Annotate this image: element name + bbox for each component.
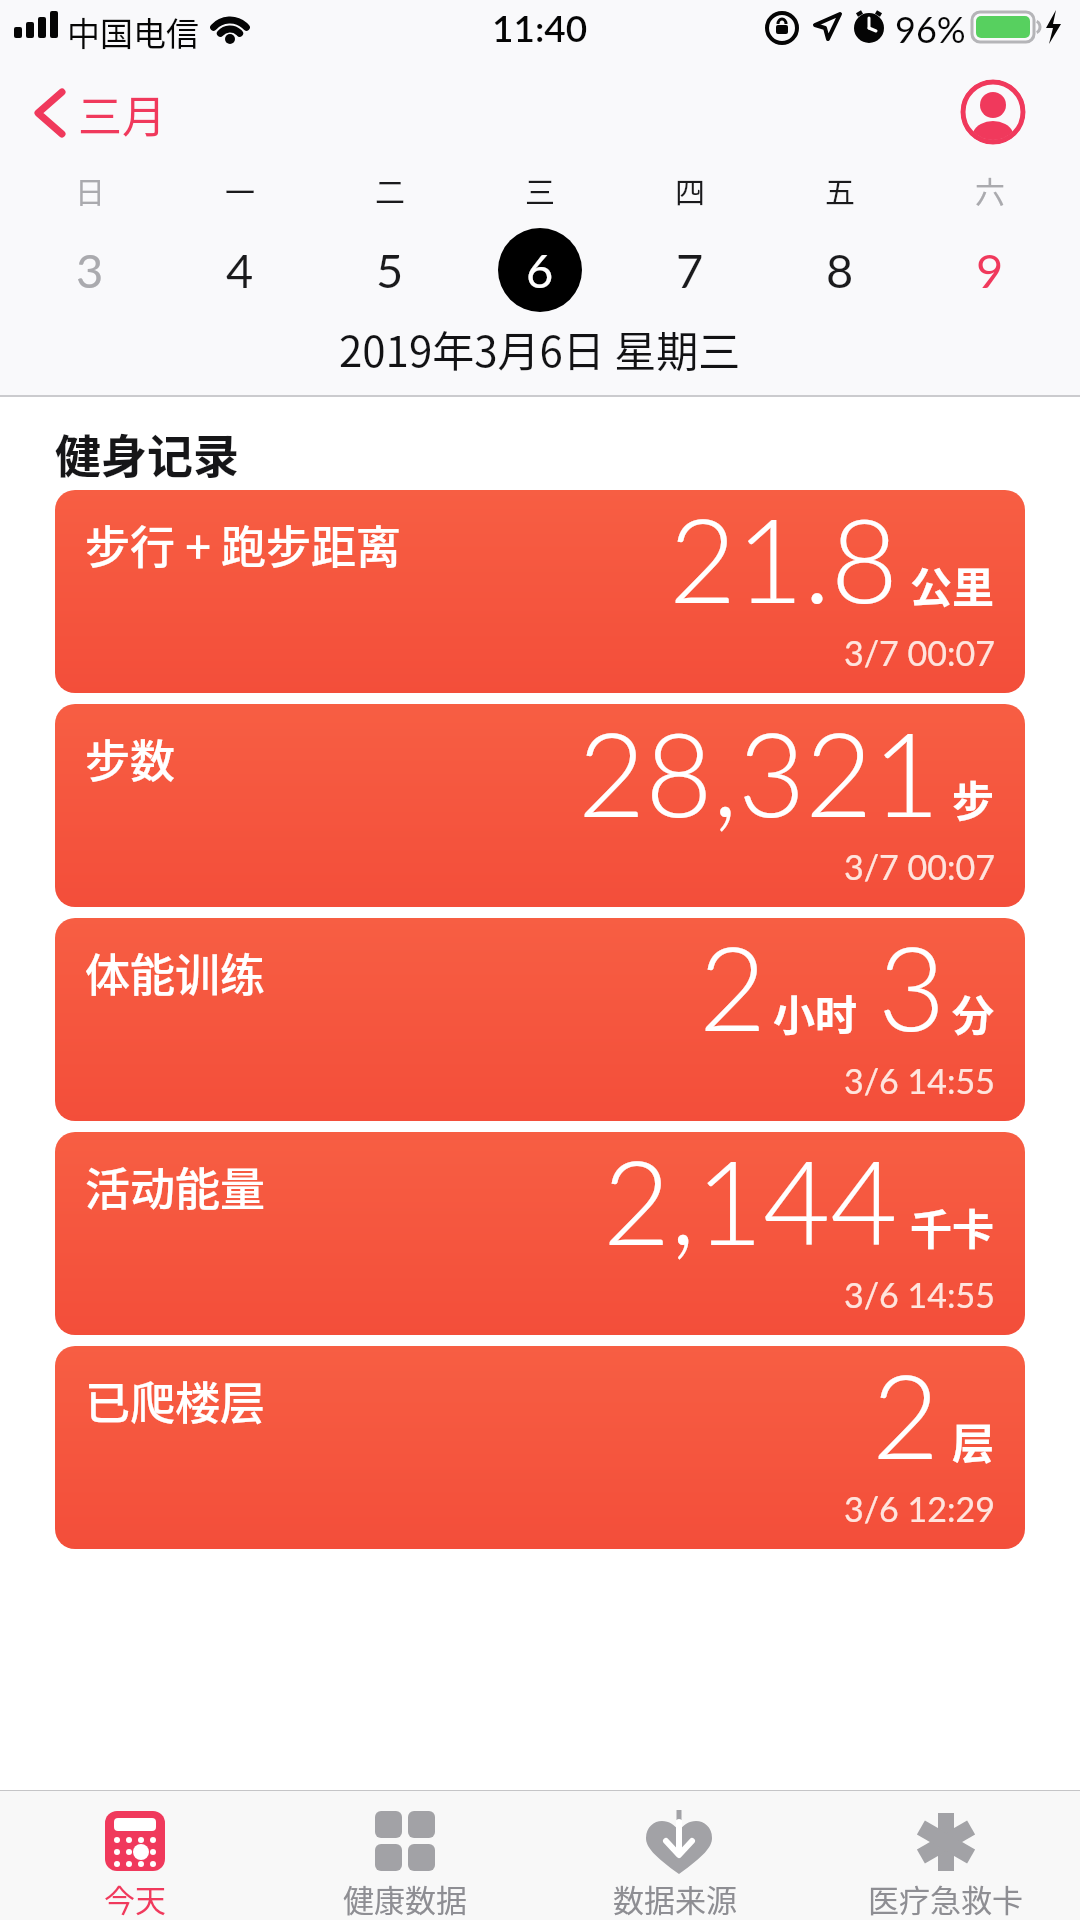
button[interactable]: 9 [915, 222, 1065, 318]
button[interactable]: 6 [465, 222, 615, 318]
staticText: 六 [975, 168, 1005, 208]
button[interactable]: 三月 [20, 80, 200, 144]
staticText: 5 [376, 242, 404, 298]
staticText: 2019年3月6日 星期三 [339, 318, 741, 379]
staticText: 3/7 00:07 [844, 632, 995, 673]
staticText: 3 [878, 918, 946, 1056]
staticText: 健身记录 [55, 420, 239, 487]
staticText: 健康数据 [343, 1876, 467, 1920]
staticText: 层 [952, 1410, 995, 1471]
staticText: 医疗急救卡 [868, 1876, 1023, 1920]
button[interactable]: 3 [15, 222, 165, 318]
staticText: 数据来源 [613, 1876, 737, 1920]
button[interactable]: 体能训练 [55, 918, 1025, 1121]
staticText: 9 [976, 242, 1004, 298]
staticText: 步 [952, 768, 995, 829]
staticText: 千卡 [910, 1196, 995, 1257]
button[interactable]: 已爬楼层 [55, 1346, 1025, 1549]
button[interactable]: 4 [165, 222, 315, 318]
button[interactable]: 步数 [55, 704, 1025, 907]
staticText: 3/6 14:55 [844, 1274, 995, 1315]
button[interactable]: 8 [765, 222, 915, 318]
staticText: 步行 + 跑步距离 [85, 512, 401, 577]
staticText: 2,144 [603, 1132, 898, 1270]
staticText: 分 [952, 982, 995, 1043]
staticText: 7 [676, 242, 704, 298]
button[interactable]: 步行 + 跑步距离 [55, 490, 1025, 693]
button[interactable]: 今天 [0, 1790, 270, 1920]
staticText: 6 [526, 242, 554, 298]
staticText: 11:40 [492, 5, 588, 49]
staticText: 今天 [104, 1876, 166, 1920]
staticText: 2 [699, 918, 767, 1056]
staticText: 活动能量 [85, 1154, 266, 1219]
staticText: 四 [675, 168, 705, 208]
staticText: 五 [825, 168, 855, 208]
button[interactable]: 数据来源 [540, 1790, 810, 1920]
staticText: 3/7 00:07 [844, 846, 995, 887]
staticText: 一 [225, 168, 255, 208]
staticText: 三月 [78, 82, 166, 146]
staticText: 3/6 14:55 [844, 1060, 995, 1101]
button[interactable]: 医疗急救卡 [810, 1790, 1080, 1920]
staticText: 4 [226, 242, 254, 298]
staticText: 3/6 12:29 [844, 1488, 995, 1529]
staticText: 3 [76, 242, 104, 298]
button[interactable]: 健康数据 [270, 1790, 540, 1920]
staticText: 小时 [773, 982, 858, 1043]
button[interactable]: 5 [315, 222, 465, 318]
staticText: 二 [375, 168, 405, 208]
staticText: 21.8 [669, 490, 898, 628]
staticText: 公里 [910, 554, 995, 615]
staticText: 已爬楼层 [85, 1368, 266, 1433]
staticText: 三 [525, 168, 555, 208]
button[interactable] [960, 79, 1026, 145]
button[interactable]: 7 [615, 222, 765, 318]
staticText: 中国电信 [67, 8, 199, 56]
staticText: 日 [75, 168, 105, 208]
staticText: 2 [872, 1346, 940, 1484]
staticText: 28,321 [578, 704, 940, 842]
staticText: 体能训练 [85, 940, 266, 1005]
staticText: 8 [826, 242, 854, 298]
staticText: 96% [895, 7, 966, 50]
staticText: 步数 [85, 726, 176, 791]
button[interactable]: 活动能量 [55, 1132, 1025, 1335]
